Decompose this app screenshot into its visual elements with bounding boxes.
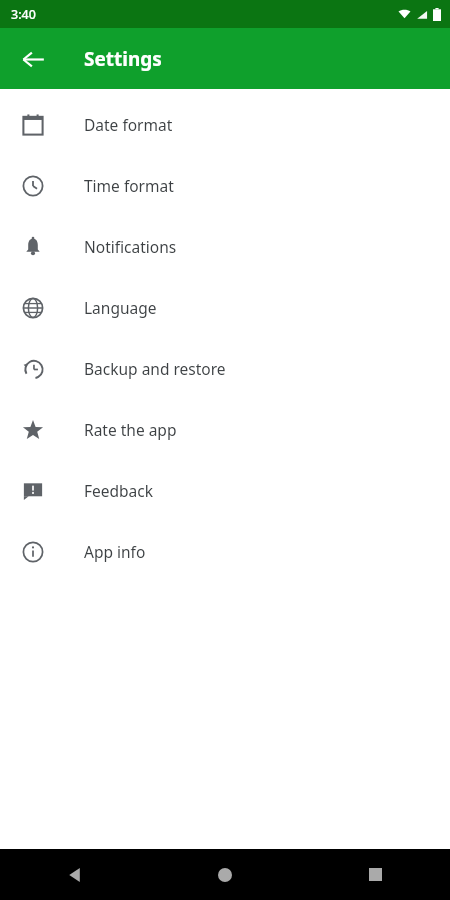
button[interactable]: App info [0, 521, 450, 582]
staticText: 3:40 [11, 6, 36, 23]
button[interactable]: Back [0, 849, 150, 900]
button[interactable]: Notifications [0, 216, 450, 277]
button[interactable]: Rate the app [0, 399, 450, 460]
staticText: App info [84, 541, 146, 562]
button[interactable]: Feedback [0, 460, 450, 521]
button[interactable]: Recent apps [300, 849, 450, 900]
staticText: Rate the app [84, 419, 177, 440]
button[interactable]: Home [150, 849, 300, 900]
staticText: Language [84, 297, 157, 318]
button[interactable]: Date format [0, 94, 450, 155]
button[interactable]: Backup and restore [0, 338, 450, 399]
staticText: Notifications [84, 236, 177, 257]
staticText: Feedback [84, 480, 154, 501]
button[interactable]: Time format [0, 155, 450, 216]
staticText: Backup and restore [84, 358, 226, 379]
staticText: Time format [84, 175, 174, 196]
button[interactable]: Back [10, 36, 56, 82]
staticText: Settings [84, 46, 162, 72]
button[interactable]: Language [0, 277, 450, 338]
staticText: Date format [84, 114, 173, 135]
